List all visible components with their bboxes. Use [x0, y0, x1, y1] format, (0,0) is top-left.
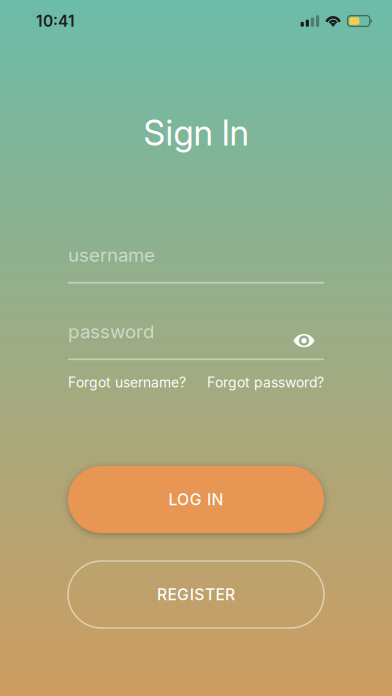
button[interactable]: REGISTER: [68, 561, 324, 628]
button[interactable]: LOG IN: [68, 466, 324, 533]
staticText: Forgot password?: [207, 374, 324, 391]
staticText: 10:41: [36, 12, 75, 30]
staticText: Forgot username?: [68, 374, 186, 391]
staticText: password: [68, 320, 154, 343]
staticText: REGISTER: [157, 585, 235, 604]
staticText: LOG IN: [168, 490, 223, 509]
button[interactable]: Show password: [294, 319, 324, 343]
staticText: username: [68, 244, 155, 266]
staticText: Sign In: [143, 112, 248, 154]
button[interactable]: Forgot password?: [207, 374, 324, 391]
button[interactable]: Forgot username?: [68, 374, 186, 391]
